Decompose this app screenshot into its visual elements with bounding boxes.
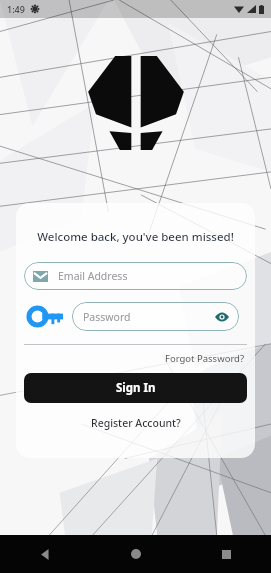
staticText: 1:49 bbox=[7, 3, 25, 15]
button[interactable]: Password bbox=[24, 302, 68, 331]
button[interactable]: Email Address bbox=[24, 262, 247, 290]
staticText: Email Address bbox=[58, 269, 128, 283]
staticText: Welcome back, you've been missed! bbox=[37, 229, 234, 245]
staticText: Forgot Password? bbox=[165, 352, 245, 365]
button[interactable]: Show password bbox=[213, 308, 230, 325]
staticText: Sign In bbox=[116, 380, 156, 396]
button[interactable]: Recent apps bbox=[181, 535, 271, 573]
button[interactable]: Sign In bbox=[24, 373, 247, 403]
button[interactable]: Back bbox=[0, 535, 91, 573]
button[interactable]: Home bbox=[91, 535, 181, 573]
button[interactable]: Password bbox=[72, 302, 239, 331]
button[interactable]: Forgot Password? bbox=[163, 351, 247, 366]
staticText: Register Account? bbox=[91, 416, 181, 430]
staticText: Password bbox=[83, 310, 213, 324]
button[interactable]: Register Account? bbox=[85, 414, 187, 432]
